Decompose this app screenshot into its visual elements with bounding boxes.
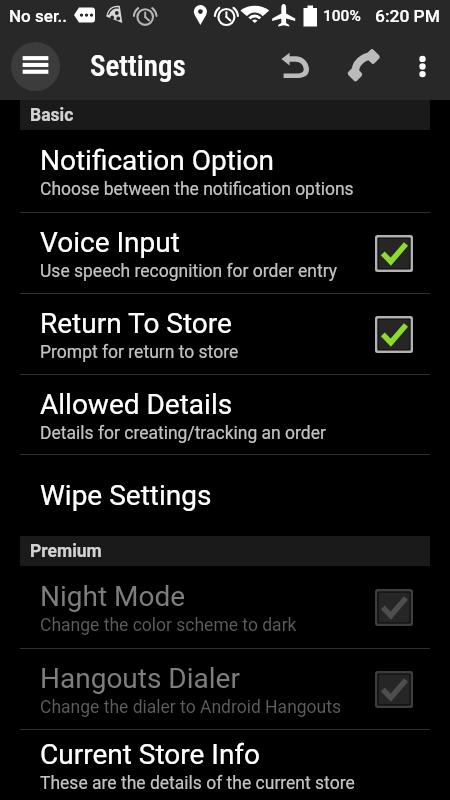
staticText: Night Mode	[40, 580, 186, 613]
button[interactable]: Current Store Info	[0, 730, 450, 800]
button[interactable]: Night Mode	[0, 566, 450, 648]
button[interactable]: Hangouts Dialer	[0, 649, 450, 729]
staticText: Settings	[90, 49, 186, 83]
staticText: 6:20 PM	[375, 6, 440, 26]
staticText: Change the dialer to Android Hangouts	[40, 697, 342, 718]
staticText: Prompt for return to store	[40, 342, 239, 363]
staticText: Change the color scheme to dark	[40, 615, 297, 636]
button[interactable]: Allowed Details	[0, 375, 450, 454]
button[interactable]: Undo	[272, 42, 320, 90]
button[interactable]: Voice Input	[0, 213, 450, 293]
button[interactable]: Toggle Voice Input	[375, 235, 413, 272]
button[interactable]: Return To Store	[0, 294, 450, 374]
button[interactable]: More options	[400, 44, 445, 89]
staticText: Use speech recognition for order entry	[40, 261, 337, 282]
button[interactable]: Toggle Hangouts Dialer	[375, 671, 413, 708]
button[interactable]: Wipe Settings	[0, 455, 450, 536]
button[interactable]: Open navigation menu	[11, 42, 60, 91]
button[interactable]: Call	[341, 42, 389, 90]
staticText: No ser..	[9, 6, 67, 26]
staticText: Current Store Info	[40, 738, 261, 771]
staticText: Voice Input	[40, 226, 180, 259]
staticText: Premium	[30, 541, 102, 562]
staticText: Return To Store	[40, 307, 232, 340]
staticText: Wipe Settings	[40, 479, 212, 512]
staticText: Notification Option	[40, 144, 275, 177]
staticText: Hangouts Dialer	[40, 662, 240, 695]
button[interactable]: Notification Option	[0, 130, 450, 212]
button[interactable]: Toggle Night Mode	[375, 589, 413, 626]
staticText: 100%	[323, 7, 361, 25]
button[interactable]: Toggle Return To Store	[375, 316, 413, 353]
staticText: Basic	[30, 105, 74, 126]
staticText: Details for creating/tracking an order	[40, 423, 326, 444]
staticText: Choose between the notification options	[40, 179, 354, 200]
staticText: Allowed Details	[40, 388, 233, 421]
staticText: These are the details of the current sto…	[40, 773, 355, 794]
